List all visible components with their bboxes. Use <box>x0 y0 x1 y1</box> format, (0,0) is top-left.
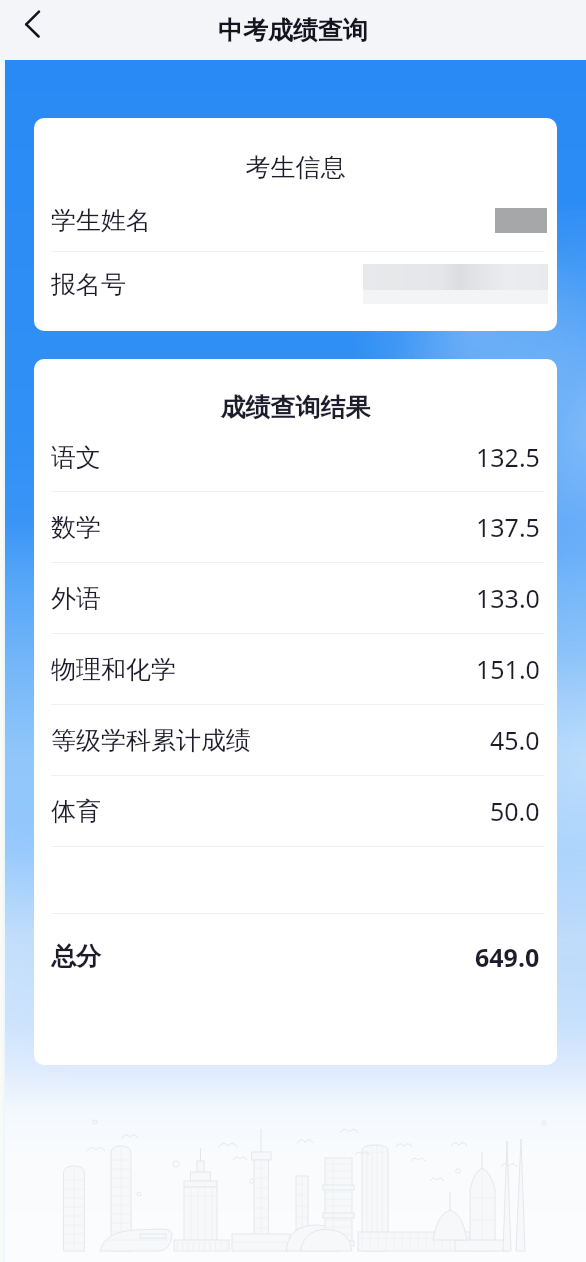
staticText: 报名号 <box>51 269 126 300</box>
staticText: 50.0 <box>490 794 540 828</box>
button[interactable]: 等级学科累计成绩 <box>51 705 540 775</box>
button[interactable]: 数学 <box>51 492 540 562</box>
button[interactable]: 外语 <box>51 563 540 633</box>
staticText: 考生信息 <box>34 152 557 183</box>
staticText: 649.0 <box>475 940 540 974</box>
staticText: 外语 <box>51 583 101 614</box>
staticText: 成绩查询结果 <box>34 392 557 423</box>
staticText: 等级学科累计成绩 <box>51 725 251 756</box>
button[interactable]: 学生姓名 <box>51 190 547 251</box>
button[interactable]: Back <box>0 0 62 60</box>
staticText: 137.5 <box>476 510 540 544</box>
button[interactable]: 物理和化学 <box>51 634 540 704</box>
staticText: 体育 <box>51 796 101 827</box>
staticText: 中考成绩查询 <box>218 15 368 46</box>
staticText: 语文 <box>51 442 101 473</box>
staticText: 151.0 <box>476 652 540 686</box>
staticText: 物理和化学 <box>51 654 176 685</box>
button[interactable]: 体育 <box>51 776 540 846</box>
staticText: 总分 <box>51 941 101 972</box>
button[interactable]: 语文 <box>51 423 540 491</box>
button[interactable]: 报名号 <box>51 252 548 316</box>
staticText: 133.0 <box>476 581 540 615</box>
staticText: 132.5 <box>476 440 540 474</box>
button[interactable]: 总分 <box>51 914 540 999</box>
staticText: 学生姓名 <box>51 205 151 236</box>
staticText: 45.0 <box>490 723 540 757</box>
staticText: 数学 <box>51 512 101 543</box>
